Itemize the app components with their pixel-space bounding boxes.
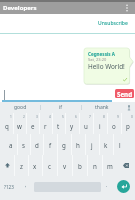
button[interactable]: Send — [115, 89, 134, 98]
button[interactable]: Shift — [0, 155, 14, 176]
staticText: . — [106, 182, 108, 189]
staticText: 4 — [49, 115, 51, 119]
button[interactable]: 2 — [13, 113, 26, 134]
button[interactable]: 3 — [26, 113, 39, 134]
staticText: o — [112, 122, 116, 130]
staticText: q — [5, 122, 9, 130]
button[interactable]: d — [30, 134, 43, 155]
button[interactable]: s — [17, 134, 30, 155]
staticText: p — [126, 122, 130, 130]
staticText: i — [99, 122, 101, 130]
button[interactable]: 7 — [79, 113, 93, 134]
staticText: Hello World! — [88, 62, 125, 71]
staticText: 8 — [103, 115, 105, 119]
staticText: n — [93, 162, 97, 170]
button[interactable]: if — [40, 102, 81, 113]
button[interactable]: 5 — [52, 113, 65, 134]
staticText: 3 — [36, 115, 38, 119]
button[interactable]: , — [18, 176, 34, 197]
staticText: s — [22, 141, 25, 149]
staticText: m — [107, 162, 113, 170]
staticText: 5 — [62, 115, 64, 119]
staticText: k — [104, 141, 108, 149]
staticText: 9 — [117, 115, 119, 119]
staticText: a — [9, 141, 13, 149]
staticText: , — [25, 182, 27, 189]
button[interactable]: . — [101, 176, 112, 197]
staticText: Send — [117, 90, 133, 98]
button[interactable]: 6 — [65, 113, 79, 134]
staticText: x — [33, 162, 37, 170]
button[interactable]: Unsubscribe — [98, 20, 128, 27]
button[interactable]: 4 — [39, 113, 52, 134]
button[interactable]: ?123 — [0, 176, 18, 197]
staticText: ?123 — [4, 184, 14, 190]
staticText: 0 — [131, 115, 133, 119]
staticText: j — [91, 141, 93, 149]
button[interactable]: 8 — [93, 113, 107, 134]
staticText: good — [14, 104, 27, 111]
staticText: thank — [95, 104, 109, 111]
button[interactable]: k — [99, 134, 113, 155]
button[interactable]: More options — [119, 2, 135, 14]
staticText: y — [70, 122, 74, 130]
staticText: z — [20, 162, 23, 170]
staticText: e — [31, 122, 35, 130]
staticText: if — [59, 104, 63, 111]
staticText: d — [35, 141, 39, 149]
staticText: 1 — [10, 115, 12, 119]
button[interactable]: l — [113, 134, 127, 155]
staticText: l — [119, 141, 121, 149]
button[interactable]: x — [28, 155, 42, 176]
button[interactable]: Enter — [112, 176, 135, 197]
button[interactable]: b — [72, 155, 87, 176]
staticText: Developers — [3, 4, 37, 12]
staticText: h — [76, 141, 80, 149]
button[interactable]: n — [87, 155, 102, 176]
button[interactable]: z — [14, 155, 28, 176]
button[interactable]: thank — [81, 102, 122, 113]
button[interactable]: c — [42, 155, 57, 176]
button[interactable]: v — [57, 155, 72, 176]
button[interactable]: 1 — [0, 113, 13, 134]
button[interactable]: Voice input — [122, 102, 135, 113]
staticText: b — [78, 162, 82, 170]
button[interactable]: f — [43, 134, 57, 155]
staticText: w — [17, 122, 22, 130]
button[interactable]: a — [4, 134, 17, 155]
staticText: r — [44, 122, 47, 130]
button[interactable]: good — [0, 102, 40, 113]
button[interactable]: Backspace — [117, 155, 135, 176]
staticText: g — [62, 141, 66, 149]
button[interactable]: 0 — [121, 113, 135, 134]
staticText: 6 — [75, 115, 77, 119]
staticText: 2 — [23, 115, 25, 119]
staticText: Cegnessis A — [88, 51, 115, 57]
button[interactable]: 9 — [107, 113, 121, 134]
button[interactable]: g — [57, 134, 71, 155]
staticText: c — [48, 162, 51, 170]
staticText: v — [63, 162, 67, 170]
button[interactable]: j — [85, 134, 99, 155]
button[interactable]: h — [71, 134, 85, 155]
staticText: u — [84, 122, 88, 130]
staticText: t — [57, 122, 60, 130]
staticText: Sat, 23:20 — [88, 57, 107, 62]
staticText: 7 — [89, 115, 91, 119]
staticText: f — [49, 141, 52, 149]
button[interactable]: m — [102, 155, 117, 176]
